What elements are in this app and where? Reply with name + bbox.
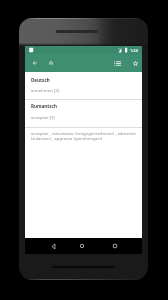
button[interactable]: Swap languages	[44, 54, 58, 72]
staticText: Rumantsch	[31, 103, 57, 109]
button[interactable]: Home	[70, 238, 94, 254]
staticText: acceptar [3]	[31, 114, 55, 120]
button[interactable]: Back	[41, 238, 65, 254]
staticText: 1:24	[130, 48, 138, 53]
button[interactable]: Add to favorites	[128, 54, 142, 72]
staticText: annehmen [2]	[31, 87, 60, 93]
button[interactable]: Word list	[110, 54, 124, 72]
button[interactable]: Back	[28, 54, 42, 72]
button[interactable]: Recent apps	[103, 238, 127, 254]
staticText: acceptar , retschaiver (entgegennehmen) …	[31, 130, 138, 141]
staticText: Deutsch	[31, 77, 50, 83]
